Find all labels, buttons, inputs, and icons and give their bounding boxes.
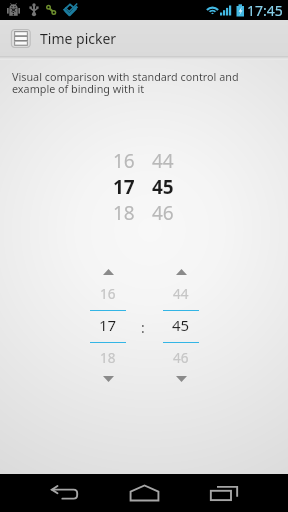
button[interactable]: Increment — [90, 264, 126, 282]
button[interactable]: Decrement — [163, 369, 199, 387]
button[interactable]: Home — [104, 474, 184, 512]
staticText: 45 — [152, 174, 174, 200]
button[interactable]: Back — [24, 474, 104, 512]
staticText: 16 — [113, 148, 135, 174]
staticText: 16 — [100, 285, 116, 303]
button[interactable]: Decrement — [90, 369, 126, 387]
staticText: 18 — [100, 349, 116, 367]
staticText: Visual comparison with standard control … — [12, 69, 239, 96]
staticText: 46 — [152, 200, 174, 226]
staticText: 45 — [172, 315, 190, 335]
staticText: : — [141, 318, 145, 337]
staticText: 18 — [113, 200, 135, 226]
button[interactable]: Recent apps — [184, 474, 264, 512]
staticText: 46 — [173, 349, 189, 367]
staticText: Time picker — [40, 29, 117, 48]
staticText: 17 — [113, 174, 135, 200]
button[interactable]: Increment — [163, 264, 199, 282]
staticText: 44 — [152, 148, 174, 174]
staticText: 44 — [173, 285, 189, 303]
staticText: 17 — [99, 315, 117, 335]
staticText: 17:45 — [247, 1, 283, 20]
